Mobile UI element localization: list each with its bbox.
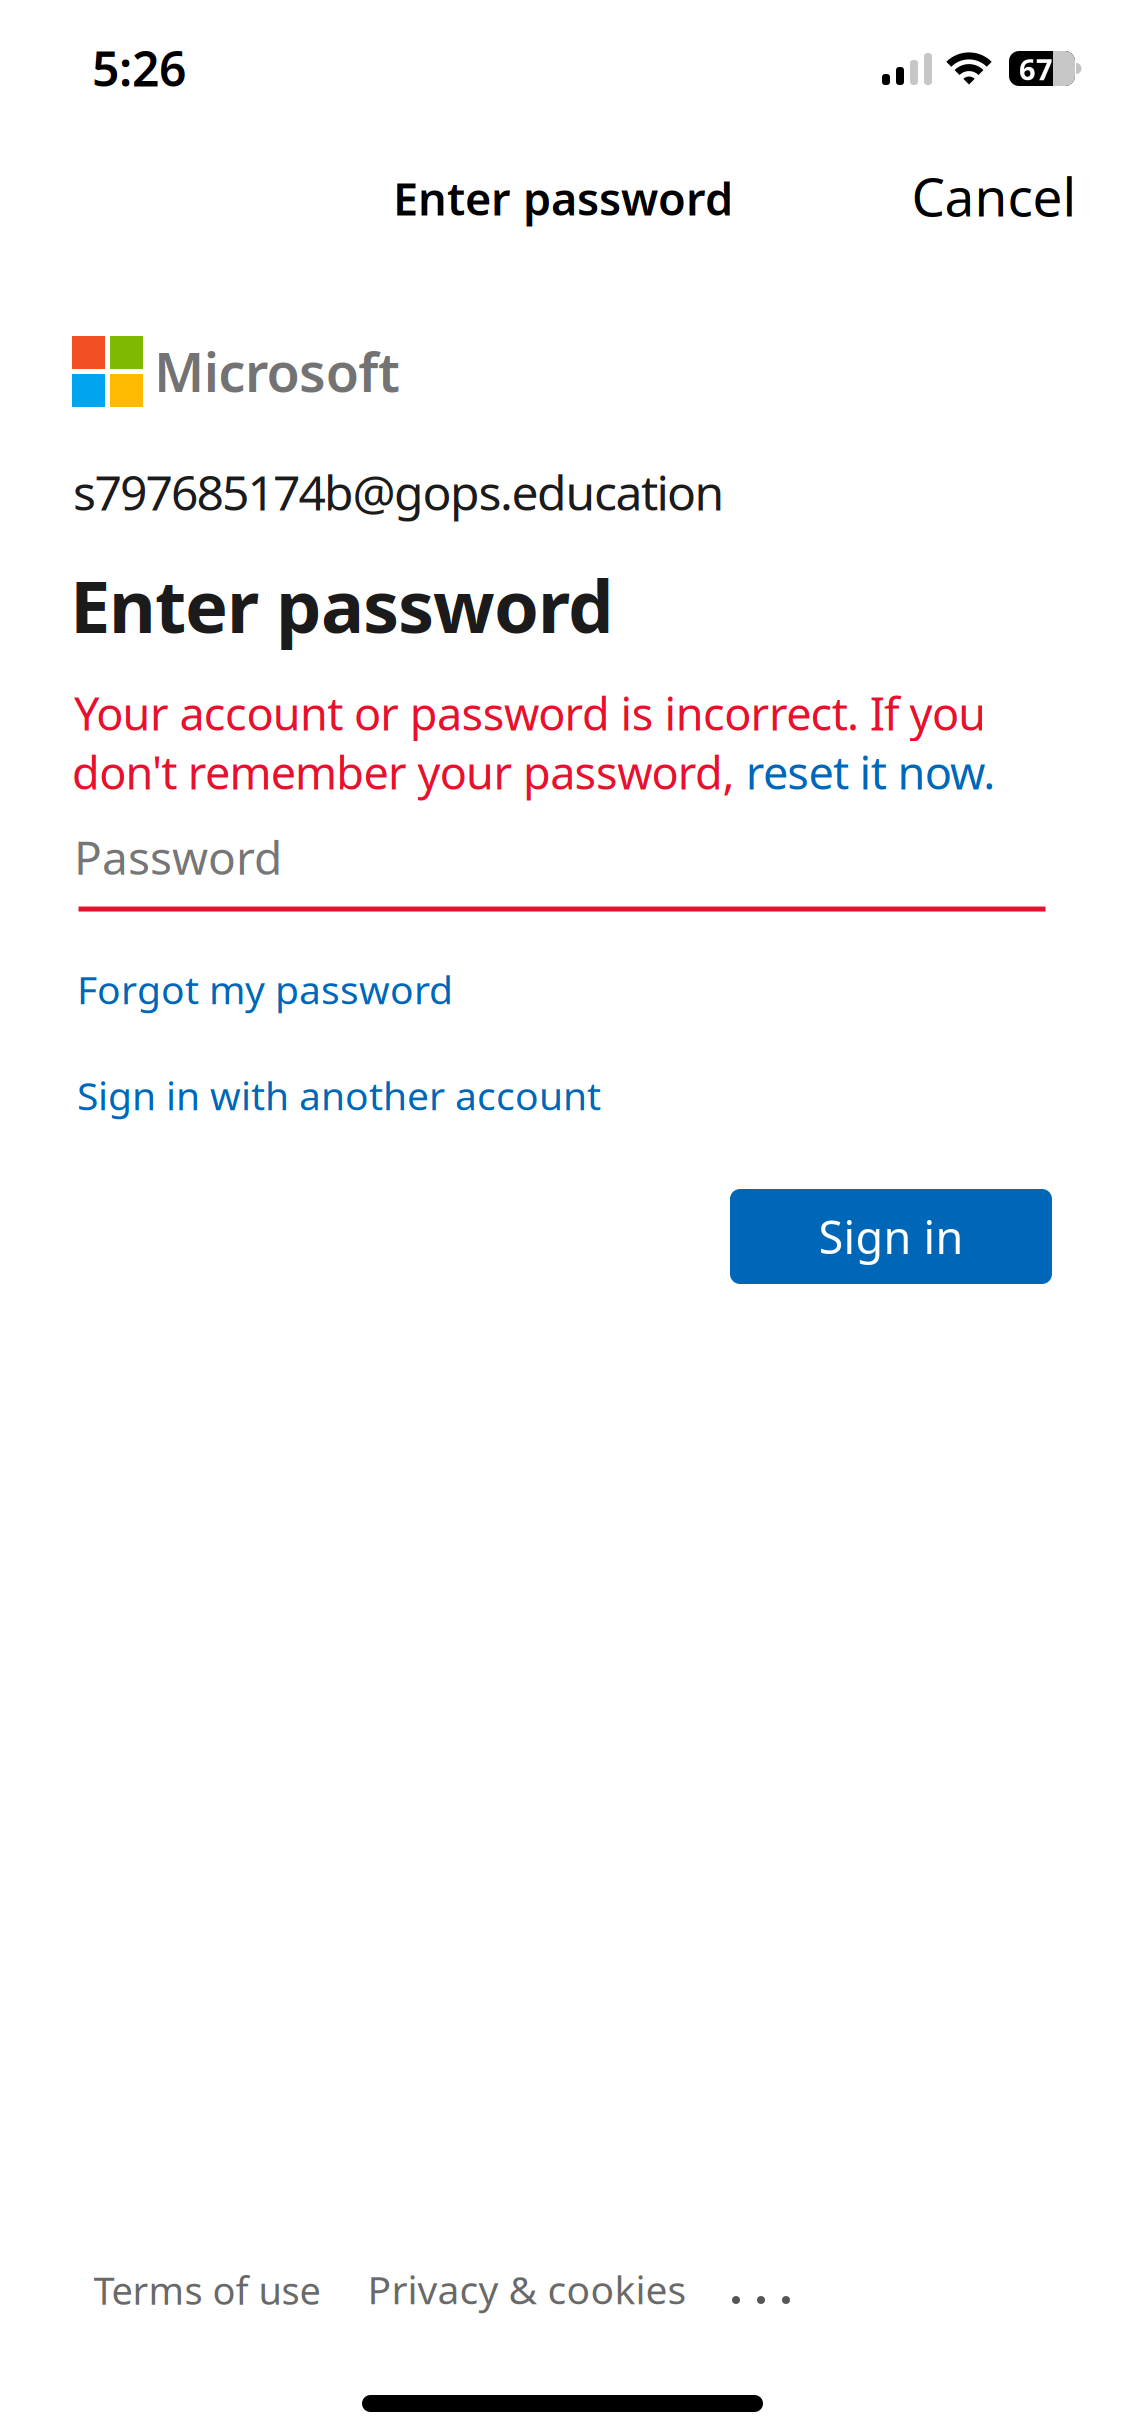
staticText: Forgot my password [77,963,453,1015]
staticText: Cancel [911,161,1076,231]
staticText: Microsoft [154,335,400,407]
button[interactable]: Terms of use [93,2265,320,2315]
button[interactable]: Sign in with another account [77,1069,601,1121]
staticText: Sign in [818,1207,963,1266]
staticText: Your account or password is incorrect. I… [74,683,986,743]
staticText: Sign in with another account [77,1069,601,1121]
button[interactable]: Cancel [911,161,1076,231]
staticText: reset it now. [746,742,995,802]
staticText: 5:26 [92,36,186,100]
button[interactable]: Sign in [730,1189,1052,1284]
button[interactable]: Forgot my password [77,963,453,1015]
button[interactable]: Password [74,826,1045,912]
staticText: Privacy & cookies [367,2263,686,2315]
button[interactable]: reset it now. [746,742,995,802]
staticText: s797685174b@gops.education [73,460,724,524]
staticText: Terms of use [93,2265,320,2315]
staticText: 67 [1019,50,1053,88]
staticText: don't remember your password, [72,742,746,802]
staticText: Password [74,826,282,888]
staticText: Enter password [393,168,733,228]
staticText: Enter password [70,557,614,653]
button[interactable]: Privacy & cookies [367,2263,686,2315]
button[interactable]: More [732,2296,790,2304]
